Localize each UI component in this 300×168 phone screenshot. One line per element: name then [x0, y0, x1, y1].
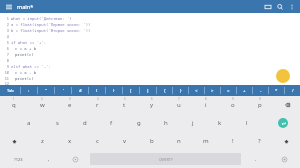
button[interactable]: ) — [106, 85, 122, 96]
staticText: ?123 — [14, 157, 23, 162]
button[interactable]: { — [157, 85, 172, 96]
button[interactable]: / — [285, 85, 300, 96]
button[interactable]: ' — [55, 85, 71, 96]
button[interactable]: Tab — [0, 85, 20, 96]
button[interactable]: ! — [219, 132, 246, 150]
staticText: a = float(input('Первое число: ')) — [11, 22, 91, 27]
staticText: 4 — [97, 97, 99, 101]
button[interactable]: ] — [140, 85, 156, 96]
button[interactable]: c — [84, 132, 111, 150]
staticText: y — [150, 101, 154, 109]
staticText: k — [218, 119, 222, 127]
staticText: + — [243, 88, 246, 94]
button[interactable]: s — [43, 114, 71, 132]
staticText: 11 — [0, 76, 9, 81]
button[interactable]: 3 — [56, 96, 84, 114]
button[interactable]: " — [38, 85, 54, 96]
staticText: t — [123, 101, 126, 109]
staticText: b — [150, 137, 154, 145]
button[interactable]: : — [21, 85, 37, 96]
staticText: , — [48, 156, 50, 163]
staticText: 2 — [41, 97, 43, 101]
button[interactable]: j — [179, 114, 206, 132]
button[interactable]: More options — [286, 1, 297, 12]
staticText: i — [205, 101, 207, 109]
button[interactable]: Backspace — [273, 96, 300, 114]
staticText: main* — [17, 3, 34, 10]
staticText: 12 — [0, 81, 9, 85]
staticText: . — [255, 156, 257, 163]
button[interactable]: 6 — [138, 96, 165, 114]
button[interactable]: ( — [89, 85, 105, 96]
button[interactable]: ? — [246, 132, 273, 150]
button[interactable]: 2 — [28, 96, 56, 114]
staticText: 0 — [259, 97, 261, 101]
staticText: v — [123, 137, 127, 145]
button[interactable]: > — [205, 85, 220, 96]
staticText: 8 — [205, 97, 207, 101]
button[interactable]: d — [71, 114, 98, 132]
button[interactable]: * — [269, 85, 284, 96]
button[interactable]: Enter — [265, 114, 300, 132]
staticText: r — [96, 101, 99, 109]
staticText: ] — [147, 88, 149, 94]
button[interactable]: Emoji — [62, 150, 88, 168]
button[interactable]: Open file — [262, 1, 273, 12]
button[interactable]: Shift — [0, 132, 28, 150]
button[interactable]: f — [98, 114, 125, 132]
button[interactable]: 8 — [192, 96, 219, 114]
staticText: } — [180, 88, 182, 94]
button[interactable]: b — [138, 132, 165, 150]
button[interactable]: 0 — [246, 96, 273, 114]
button[interactable]: < — [189, 85, 204, 96]
button[interactable]: h — [152, 114, 179, 132]
button[interactable]: # — [72, 85, 88, 96]
staticText: { — [164, 88, 166, 94]
button[interactable]: l — [233, 114, 260, 132]
button[interactable]: x — [56, 132, 84, 150]
button[interactable]: m — [192, 132, 219, 150]
staticText: s — [56, 119, 59, 127]
button[interactable]: g — [125, 114, 152, 132]
button[interactable]: 5 — [111, 96, 138, 114]
button[interactable]: - — [253, 85, 268, 96]
button[interactable]: v — [111, 132, 138, 150]
button[interactable]: Run — [276, 69, 290, 83]
staticText: elif what == '-': — [11, 64, 51, 69]
button[interactable]: + — [237, 85, 252, 96]
button[interactable]: k — [206, 114, 233, 132]
staticText: what = input('Действие: ') — [11, 16, 72, 21]
button[interactable]: Shift — [273, 132, 300, 150]
staticText: g — [137, 119, 141, 127]
button[interactable]: Voice input — [269, 150, 300, 168]
staticText: p — [258, 101, 262, 109]
button[interactable]: a — [15, 114, 43, 132]
button[interactable]: [ — [123, 85, 139, 96]
button[interactable]: 4 — [84, 96, 111, 114]
staticText: w — [40, 101, 45, 109]
staticText: ( — [96, 88, 98, 94]
staticText: e — [68, 101, 72, 109]
button[interactable]: 7 — [165, 96, 192, 114]
button[interactable]: 9 — [219, 96, 246, 114]
staticText: q — [12, 101, 16, 109]
staticText: 10 — [0, 70, 9, 75]
button[interactable]: z — [28, 132, 56, 150]
staticText: print(c) — [15, 52, 34, 57]
staticText: 2 — [0, 22, 9, 27]
staticText: = — [227, 88, 230, 94]
button[interactable]: Menu — [3, 1, 14, 12]
button[interactable]: 1 — [0, 96, 28, 114]
staticText: 5 — [0, 40, 9, 45]
button[interactable]: Space — [90, 153, 241, 165]
button[interactable]: Search — [274, 1, 285, 12]
button[interactable]: ?123 — [0, 150, 36, 168]
button[interactable]: n — [165, 132, 192, 150]
staticText: - — [260, 88, 262, 94]
staticText: o — [231, 101, 235, 109]
button[interactable]: = — [221, 85, 236, 96]
button[interactable]: } — [173, 85, 188, 96]
staticText: 3 — [0, 28, 9, 33]
